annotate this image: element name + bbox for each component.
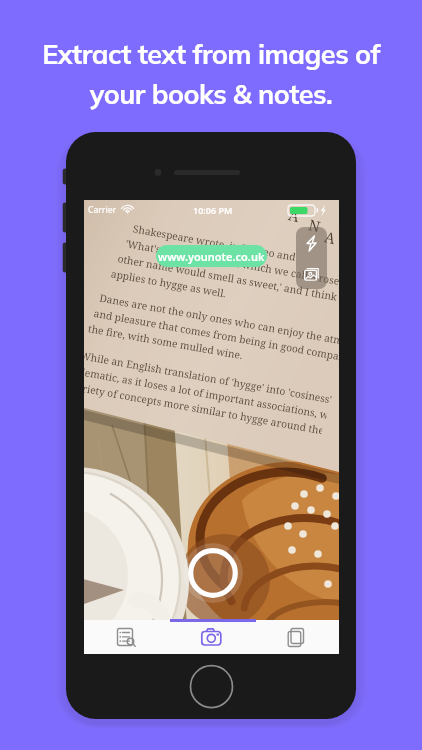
staticText: A bbox=[287, 204, 302, 224]
staticText: 10:06 PM bbox=[193, 204, 233, 216]
button[interactable]: www.younote.co.uk bbox=[156, 245, 267, 267]
staticText: Carrier bbox=[88, 204, 117, 216]
staticText: A bbox=[323, 226, 338, 246]
staticText: and pleasure that comes from being in go… bbox=[93, 306, 339, 364]
button[interactable]: Gallery bbox=[296, 259, 327, 289]
staticText: variety of concepts more similar to hygg… bbox=[84, 379, 323, 437]
staticText: blematic, as it loses a lot of important… bbox=[84, 364, 328, 422]
button[interactable]: Camera bbox=[169, 620, 254, 654]
staticText: the fire, with some mulled wine. bbox=[87, 321, 244, 362]
staticText: While an English translation of 'hygge' … bbox=[84, 348, 333, 406]
button[interactable]: Flash bbox=[296, 227, 327, 259]
staticText: www.younote.co.uk bbox=[158, 249, 265, 264]
staticText: 'What's in a name? That which we call a … bbox=[124, 236, 339, 290]
button[interactable]: Scanned text bbox=[84, 620, 169, 654]
staticText: Extract text from images of your books &… bbox=[0, 37, 422, 111]
staticText: other name would smell as sweet,' and I … bbox=[117, 251, 339, 307]
staticText: N bbox=[307, 214, 323, 235]
staticText: Shakespeare wrote, in Romeo and bbox=[132, 221, 297, 264]
staticText: Danes are not the only ones who can enjo… bbox=[99, 291, 339, 349]
button[interactable]: Documents bbox=[254, 620, 339, 654]
button[interactable]: Take photo bbox=[183, 543, 243, 603]
staticText: applies to hygge as well. bbox=[110, 266, 228, 300]
